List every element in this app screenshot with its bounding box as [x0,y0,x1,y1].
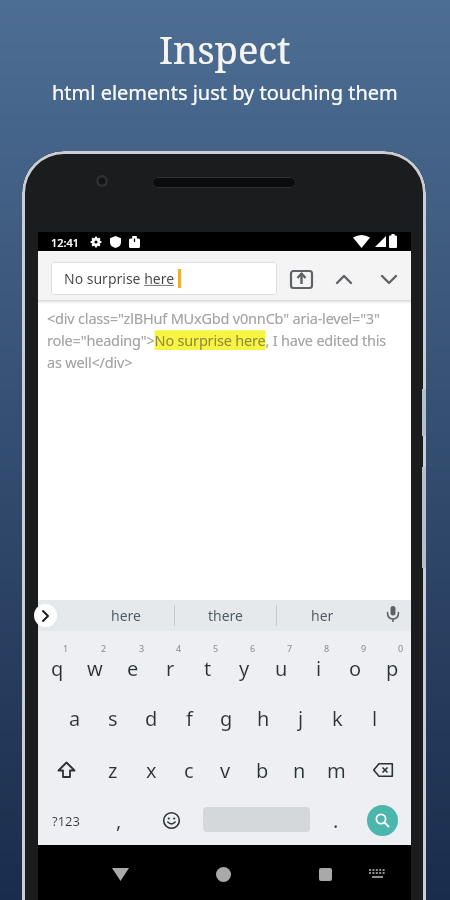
button[interactable]: here [78,600,174,631]
button[interactable]: z [94,744,132,796]
button[interactable]: there [175,600,275,631]
button[interactable]: 1 [38,640,76,692]
staticText: n [293,757,306,784]
staticText: 4 [176,642,182,654]
staticText: q [51,655,64,682]
button[interactable] [152,796,190,845]
staticText: k [332,705,343,732]
button[interactable] [319,868,332,881]
button[interactable]: 3 [114,640,152,692]
staticText: h [257,705,270,732]
button[interactable] [34,604,57,627]
button[interactable] [290,269,313,289]
button[interactable]: d [132,692,170,744]
button[interactable]: b [244,744,281,796]
staticText: d [145,705,158,732]
button[interactable] [336,275,352,284]
button[interactable]: 7 [263,640,300,692]
button[interactable]: v [207,744,244,796]
staticText: Inspect [159,23,291,75]
staticText: c [184,757,194,784]
staticText: o [349,655,362,682]
staticText: No surprise here [64,269,175,288]
button[interactable]: x [132,744,170,796]
staticText: her [311,606,334,625]
button[interactable]: k [319,692,356,744]
button[interactable]: No surprise here [51,262,277,295]
staticText: . [333,807,339,834]
staticText: ?123 [52,812,80,830]
button[interactable]: 2 [76,640,114,692]
button[interactable]: 9 [337,640,374,692]
button[interactable] [355,744,411,796]
staticText: z [108,757,118,784]
button[interactable]: l [356,692,393,744]
staticText: 6 [250,642,256,654]
button[interactable] [112,868,129,881]
staticText: e [127,655,139,682]
staticText: 5 [213,642,219,654]
button[interactable]: ?123 [38,796,94,845]
staticText: u [275,655,288,682]
staticText: 1 [63,642,69,654]
button[interactable]: a [56,692,94,744]
staticText: 8 [324,642,330,654]
staticText: 0 [398,642,404,654]
staticText: , [116,807,122,834]
staticText: there [208,606,243,625]
staticText: j [298,705,304,732]
staticText: 3 [139,642,145,654]
staticText: 12:41 [51,235,80,250]
staticText: <div class="zlBHuf MUxGbd v0nnCb" aria-l… [47,308,380,328]
button[interactable] [216,867,231,882]
staticText: r [166,655,175,682]
button[interactable]: 8 [300,640,337,692]
button[interactable] [369,869,386,881]
button[interactable]: her [277,600,367,631]
staticText: f [186,705,193,732]
button[interactable]: g [208,692,245,744]
button[interactable]: f [170,692,208,744]
staticText: 7 [287,642,293,654]
button[interactable]: . [318,796,354,845]
button[interactable] [381,275,397,284]
button[interactable]: 6 [226,640,263,692]
staticText: v [220,757,231,784]
button[interactable]: n [281,744,318,796]
button[interactable]: m [318,744,355,796]
staticText: a [69,705,81,732]
button[interactable] [386,606,400,626]
staticText: x [146,757,157,784]
button[interactable]: s [94,692,132,744]
button[interactable]: 4 [152,640,189,692]
staticText: l [372,705,378,732]
staticText: 9 [361,642,367,654]
staticText: i [316,655,322,682]
staticText: b [256,757,269,784]
staticText: y [239,655,250,682]
button[interactable]: h [245,692,282,744]
staticText: here [111,606,141,625]
staticText: m [327,757,346,784]
staticText: as well</div> [47,352,133,372]
staticText: p [386,655,399,682]
staticText: t [204,655,212,682]
button[interactable]: c [170,744,207,796]
button[interactable]: 5 [189,640,226,692]
staticText: role="heading">No surprise here, I have … [47,330,387,350]
button[interactable]: j [282,692,319,744]
staticText: s [108,705,118,732]
staticText: html elements just by touching them [52,79,398,106]
button[interactable] [38,744,94,796]
staticText: w [87,655,103,682]
button[interactable]: , [100,796,137,845]
staticText: g [220,705,233,732]
staticText: 2 [101,642,107,654]
button[interactable] [367,805,398,836]
button[interactable]: 0 [374,640,411,692]
